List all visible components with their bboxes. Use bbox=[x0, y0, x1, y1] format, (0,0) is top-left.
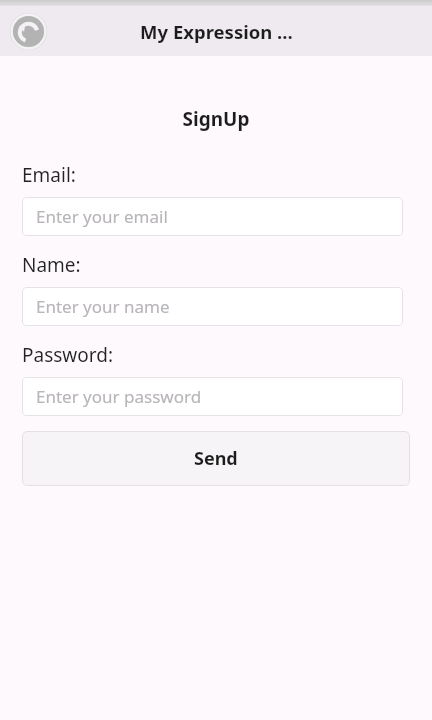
staticText: Email: bbox=[22, 162, 76, 188]
button[interactable]: Send bbox=[22, 431, 410, 486]
staticText: Password: bbox=[22, 342, 114, 368]
staticText: Name: bbox=[22, 252, 81, 278]
button[interactable]: Enter your email bbox=[22, 197, 403, 236]
staticText: Send bbox=[194, 446, 238, 471]
staticText: Enter your password bbox=[36, 385, 202, 408]
button[interactable]: Navigate up bbox=[9, 12, 48, 51]
staticText: SignUp bbox=[0, 106, 432, 132]
button[interactable]: Enter your password bbox=[22, 377, 403, 416]
staticText: Enter your email bbox=[36, 205, 168, 228]
staticText: Enter your name bbox=[36, 295, 170, 318]
button[interactable]: Enter your name bbox=[22, 287, 403, 326]
staticText: My Expression … bbox=[140, 19, 293, 44]
